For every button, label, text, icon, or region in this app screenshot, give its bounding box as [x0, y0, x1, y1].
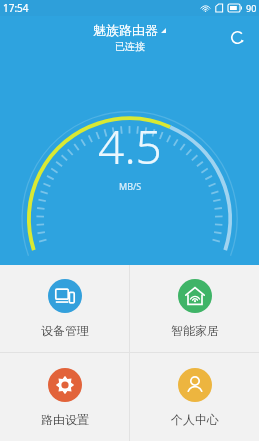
staticText: 4.5: [98, 115, 162, 178]
staticText: MB/S: [119, 180, 142, 192]
staticText: 智能家居: [171, 323, 219, 338]
button[interactable]: Refresh: [223, 23, 251, 51]
staticText: 17:54: [3, 1, 29, 15]
button[interactable]: 设备管理: [0, 265, 129, 352]
staticText: 设备管理: [41, 323, 89, 338]
staticText: 个人中心: [171, 412, 219, 427]
button[interactable]: 个人中心: [130, 353, 259, 441]
staticText: 路由设置: [41, 412, 89, 427]
button[interactable]: 智能家居: [130, 265, 259, 352]
staticText: 90: [246, 2, 257, 14]
staticText: 魅族路由器: [93, 22, 158, 38]
button[interactable]: 魅族路由器: [89, 21, 170, 39]
button[interactable]: 路由设置: [0, 353, 129, 441]
staticText: 已连接: [115, 40, 145, 53]
